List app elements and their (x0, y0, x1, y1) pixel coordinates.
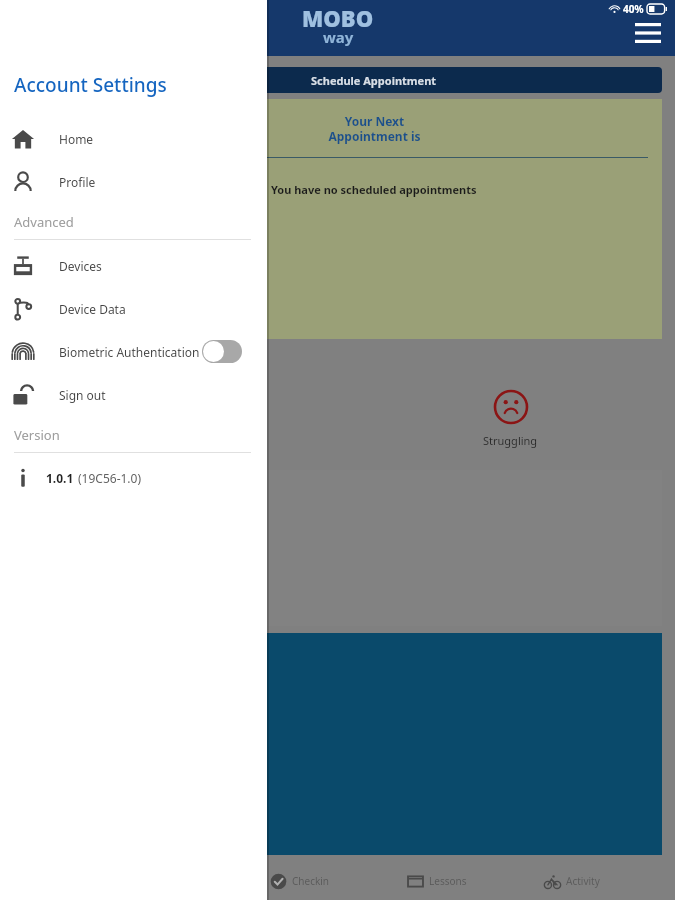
button[interactable] (8, 191, 82, 235)
button[interactable]: Struggling (414, 389, 607, 448)
staticText: MOBO (302, 3, 374, 33)
button[interactable]: Activity (538, 862, 675, 900)
staticText: 1.0.1 (46, 470, 74, 486)
staticText: Account Settings (14, 72, 167, 98)
button[interactable] (8, 238, 82, 282)
staticText: Your Next Appointment is (328, 113, 421, 144)
staticText: Checkin (292, 874, 330, 888)
staticText: Schedule Appointment (311, 73, 437, 88)
button[interactable]: Biometric Authentication (0, 330, 267, 373)
button[interactable]: Checkin (264, 862, 401, 900)
button[interactable]: Sign out (0, 373, 267, 416)
staticText: Profile (59, 174, 96, 190)
button[interactable] (8, 67, 82, 93)
button[interactable]: Schedule Appointment (86, 67, 662, 93)
staticText: Device Data (59, 301, 126, 317)
button[interactable]: Biometric Authentication toggle (202, 340, 242, 363)
button[interactable]: No Lessons available (13, 470, 662, 626)
staticText: Lessons (429, 874, 467, 888)
button[interactable]: Open menu (631, 16, 665, 50)
staticText: Advanced (14, 213, 74, 231)
staticText: Version (14, 426, 60, 444)
staticText: (19C56-1.0) (78, 470, 142, 486)
button[interactable] (8, 285, 82, 329)
staticText: How are you feeling today? (18, 353, 209, 373)
button[interactable]: 1.0.1 (0, 457, 267, 499)
button[interactable]: Devices (0, 244, 267, 287)
staticText: Biometric Authentication (59, 344, 200, 360)
staticText: Home (59, 131, 94, 147)
staticText: way (323, 27, 354, 47)
button[interactable] (8, 97, 82, 141)
staticText: 40% (623, 2, 644, 16)
staticText: Devices (59, 258, 102, 274)
button[interactable]: No Activity (13, 633, 662, 855)
staticText: Sign out (59, 387, 106, 403)
staticText: Activity (566, 874, 600, 888)
button[interactable]: Lessons (401, 862, 538, 900)
button[interactable]: Some issues (105, 389, 298, 448)
button[interactable]: Profile (0, 160, 267, 203)
button[interactable] (8, 144, 82, 188)
staticText: You have no scheduled appointments (271, 182, 477, 197)
staticText: Struggling (483, 433, 538, 448)
button[interactable]: Home (0, 117, 267, 160)
button[interactable]: Device Data (0, 287, 267, 330)
